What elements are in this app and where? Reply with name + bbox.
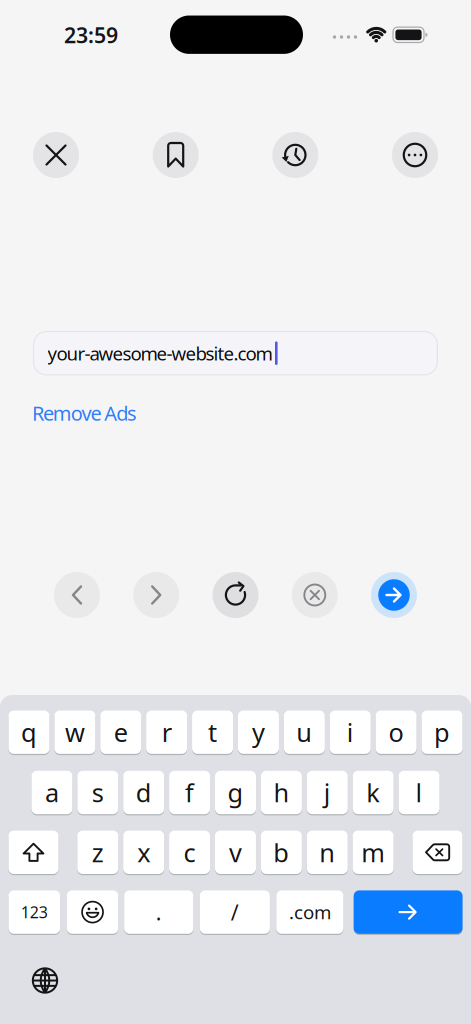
button[interactable]: o	[376, 709, 417, 755]
button[interactable]: j	[307, 770, 348, 815]
staticText: b	[273, 835, 289, 869]
button[interactable]: Cancel	[292, 572, 338, 618]
button[interactable]: e	[100, 709, 141, 755]
staticText: t	[208, 715, 217, 749]
staticText: l	[416, 776, 423, 809]
button[interactable]: More	[392, 132, 438, 178]
staticText: c	[184, 835, 196, 869]
button[interactable]: x	[123, 830, 164, 875]
button[interactable]: Go	[371, 572, 417, 618]
button[interactable]: q	[8, 709, 49, 755]
button[interactable]: r	[146, 709, 187, 755]
button[interactable]: y	[238, 709, 279, 755]
button[interactable]: c	[169, 830, 210, 875]
button[interactable]: Go	[354, 889, 462, 935]
button[interactable]: h	[261, 770, 302, 815]
button[interactable]: p	[421, 709, 462, 755]
staticText: n	[319, 835, 335, 869]
button[interactable]: Emoji	[67, 889, 118, 935]
staticText: .com	[289, 900, 331, 924]
button[interactable]: Address field	[33, 331, 438, 375]
button[interactable]: z	[77, 830, 118, 875]
button[interactable]: t	[192, 709, 233, 755]
button[interactable]: k	[353, 770, 394, 815]
staticText: your-awesome-website.com	[47, 341, 272, 366]
staticText: j	[324, 776, 331, 809]
staticText: /	[231, 898, 239, 926]
button[interactable]: Delete	[412, 830, 462, 875]
staticText: v	[229, 835, 242, 869]
staticText: o	[389, 715, 404, 749]
button[interactable]: s	[77, 770, 118, 815]
button[interactable]: n	[307, 830, 348, 875]
staticText: p	[434, 715, 450, 749]
staticText: s	[92, 776, 104, 809]
button[interactable]: l	[399, 770, 440, 815]
button[interactable]: 123	[8, 889, 60, 935]
button[interactable]: b	[261, 830, 302, 875]
staticText: i	[347, 715, 354, 749]
button[interactable]: f	[169, 770, 210, 815]
button[interactable]: d	[123, 770, 164, 815]
button[interactable]: g	[215, 770, 256, 815]
button[interactable]: Close	[33, 132, 79, 178]
staticText: g	[227, 776, 243, 809]
button[interactable]: i	[330, 709, 371, 755]
button[interactable]: Forward	[133, 572, 179, 618]
button[interactable]: u	[284, 709, 325, 755]
staticText: 23:59	[64, 21, 118, 49]
staticText: d	[136, 776, 152, 809]
staticText: 123	[21, 901, 48, 923]
staticText: r	[162, 715, 172, 749]
button[interactable]: Remove Ads	[32, 400, 137, 426]
button[interactable]: .com	[276, 889, 343, 935]
button[interactable]: Bookmarks	[153, 132, 199, 178]
button[interactable]: .	[124, 889, 193, 935]
staticText: h	[273, 776, 289, 809]
staticText: m	[361, 835, 385, 869]
button[interactable]: Shift	[8, 830, 58, 875]
staticText: y	[252, 715, 265, 749]
staticText: a	[45, 776, 59, 809]
staticText: u	[296, 715, 312, 749]
button[interactable]: Back	[54, 572, 100, 618]
staticText: k	[366, 776, 380, 809]
button[interactable]: Reload	[212, 572, 258, 618]
staticText: .	[156, 898, 162, 926]
button[interactable]: a	[31, 770, 72, 815]
staticText: w	[65, 715, 85, 749]
button[interactable]: History	[272, 132, 318, 178]
button[interactable]: Next keyboard	[32, 967, 59, 994]
button[interactable]: v	[215, 830, 256, 875]
staticText: e	[114, 715, 128, 749]
button[interactable]: w	[54, 709, 95, 755]
staticText: x	[137, 835, 150, 869]
staticText: f	[185, 776, 194, 809]
staticText: z	[92, 835, 104, 869]
staticText: q	[21, 715, 37, 749]
button[interactable]: /	[200, 889, 270, 935]
button[interactable]: m	[353, 830, 394, 875]
staticText: Remove Ads	[32, 400, 137, 426]
